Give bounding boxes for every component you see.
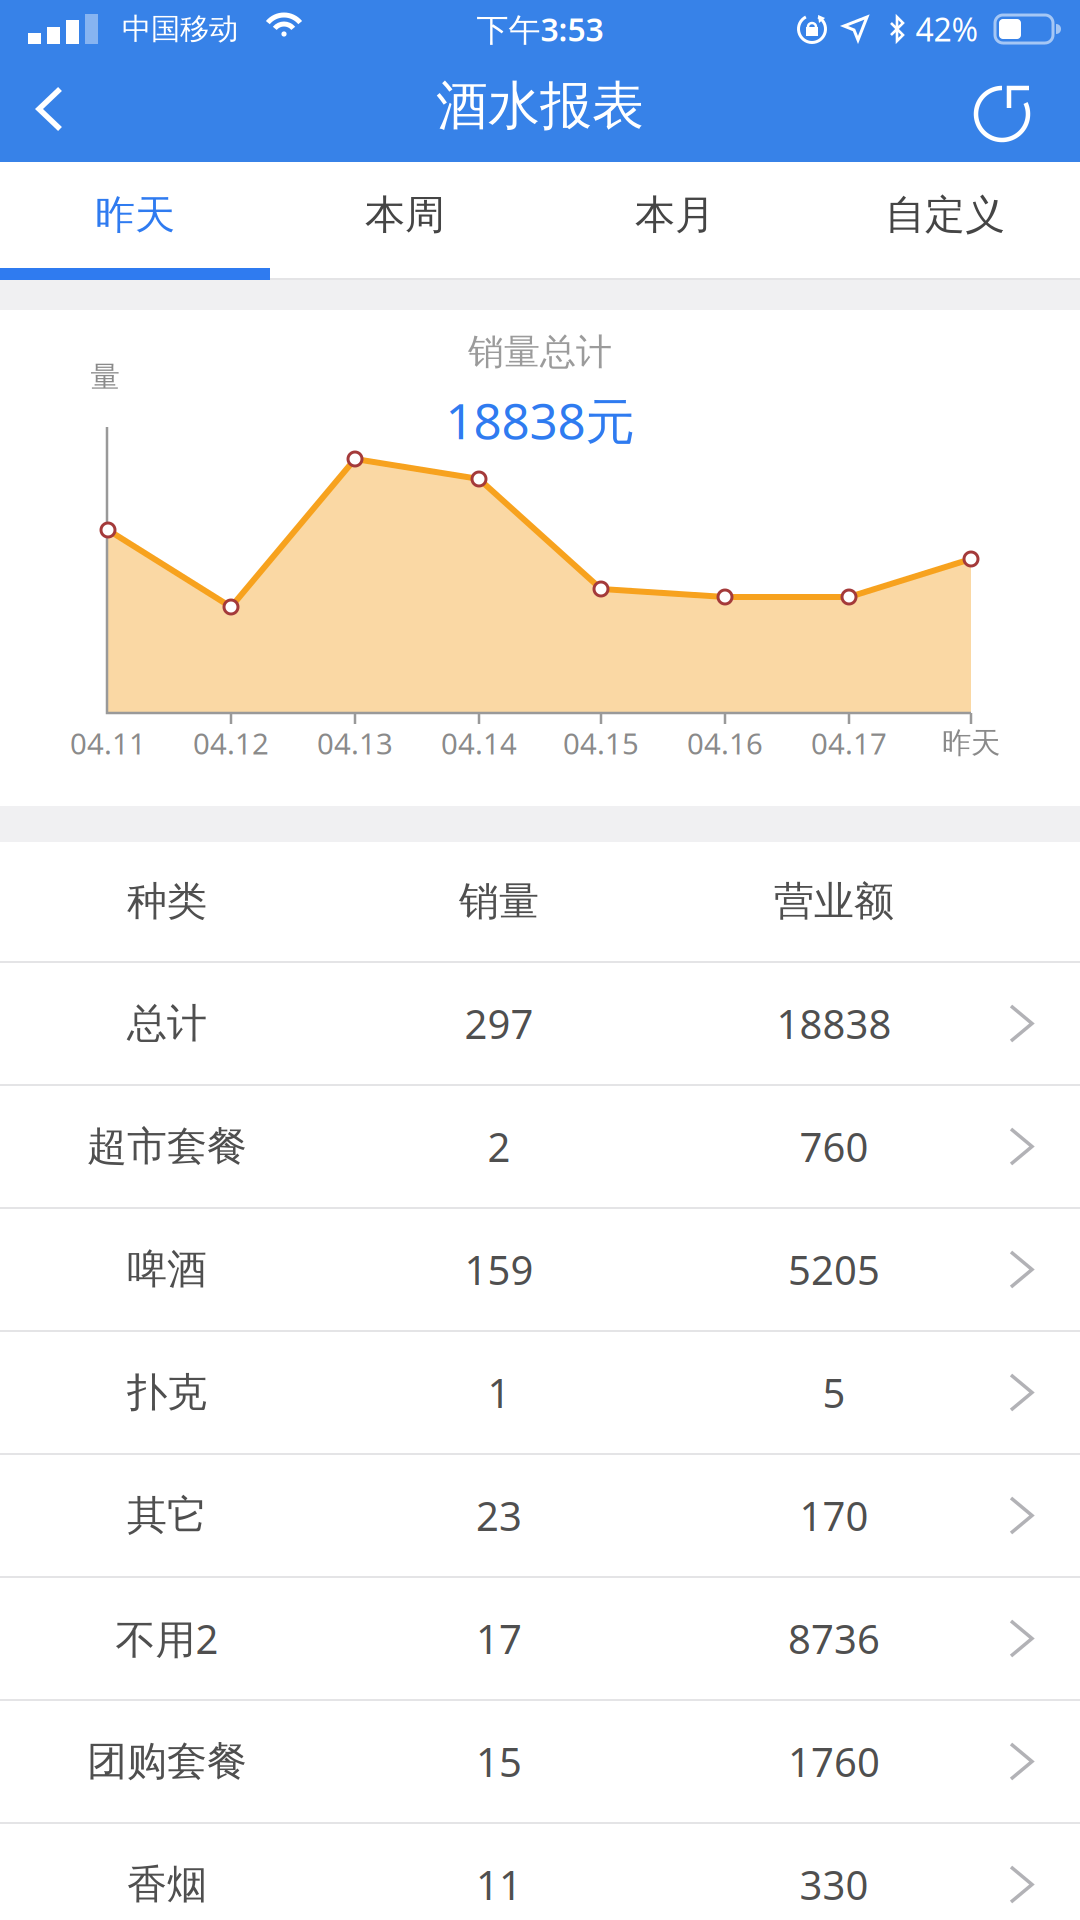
button[interactable]: 其它: [0, 1453, 1080, 1576]
staticText: 04.17: [811, 723, 887, 762]
staticText: 啤酒: [127, 1245, 207, 1294]
staticText: 760: [799, 1120, 868, 1173]
staticText: 自定义: [885, 190, 1005, 239]
button[interactable]: 团购套餐: [0, 1699, 1080, 1822]
button[interactable]: 啤酒: [0, 1207, 1080, 1330]
button[interactable]: 本月: [540, 162, 810, 268]
staticText: 170: [799, 1489, 868, 1542]
staticText: 1: [487, 1366, 510, 1419]
staticText: 04.14: [441, 723, 517, 762]
staticText: 04.13: [317, 723, 393, 762]
staticText: 8736: [788, 1612, 880, 1665]
staticText: 扑克: [127, 1368, 207, 1417]
staticText: 本月: [635, 190, 715, 239]
button[interactable]: 香烟: [0, 1822, 1080, 1920]
button[interactable]: 本周: [270, 162, 540, 268]
staticText: 23: [476, 1489, 522, 1542]
staticText: 超市套餐: [87, 1122, 247, 1171]
staticText: 297: [464, 997, 533, 1050]
staticText: 04.16: [687, 723, 763, 762]
staticText: 330: [799, 1858, 868, 1911]
staticText: 下午3:53: [476, 8, 603, 50]
staticText: 总计: [127, 999, 207, 1048]
staticText: 2: [487, 1120, 510, 1173]
staticText: 营业额: [774, 877, 894, 926]
staticText: 销量: [459, 877, 539, 926]
staticText: 酒水报表: [436, 74, 644, 138]
staticText: 昨天: [95, 190, 175, 239]
button[interactable]: 超市套餐: [0, 1084, 1080, 1207]
staticText: 18838元: [445, 387, 634, 453]
staticText: 159: [464, 1243, 533, 1296]
staticText: 销量总计: [468, 330, 612, 374]
button[interactable]: 不用2: [0, 1576, 1080, 1699]
button[interactable]: 昨天: [0, 162, 270, 268]
staticText: 04.15: [563, 723, 639, 762]
staticText: 中国移动: [122, 11, 238, 47]
staticText: 04.12: [193, 723, 269, 762]
staticText: 1760: [788, 1735, 880, 1788]
staticText: 团购套餐: [87, 1737, 247, 1786]
staticText: 其它: [127, 1491, 207, 1540]
staticText: 香烟: [127, 1860, 207, 1909]
staticText: 5205: [788, 1243, 880, 1296]
staticText: 量: [90, 359, 119, 395]
staticText: 本周: [365, 190, 445, 239]
button[interactable]: 自定义: [810, 162, 1080, 268]
button[interactable]: 总计: [0, 961, 1080, 1084]
staticText: 不用2: [115, 1612, 218, 1665]
staticText: 17: [476, 1612, 522, 1665]
button[interactable]: 扑克: [0, 1330, 1080, 1453]
staticText: 昨天: [942, 725, 1000, 761]
staticText: 15: [476, 1735, 522, 1788]
staticText: 18838: [776, 997, 891, 1050]
staticText: 11: [476, 1858, 522, 1911]
button[interactable]: Back: [26, 83, 74, 135]
staticText: 5: [822, 1366, 845, 1419]
staticText: 种类: [127, 877, 207, 926]
staticText: 42%: [915, 8, 978, 50]
button[interactable]: Refresh: [970, 78, 1034, 142]
staticText: 04.11: [70, 723, 146, 762]
